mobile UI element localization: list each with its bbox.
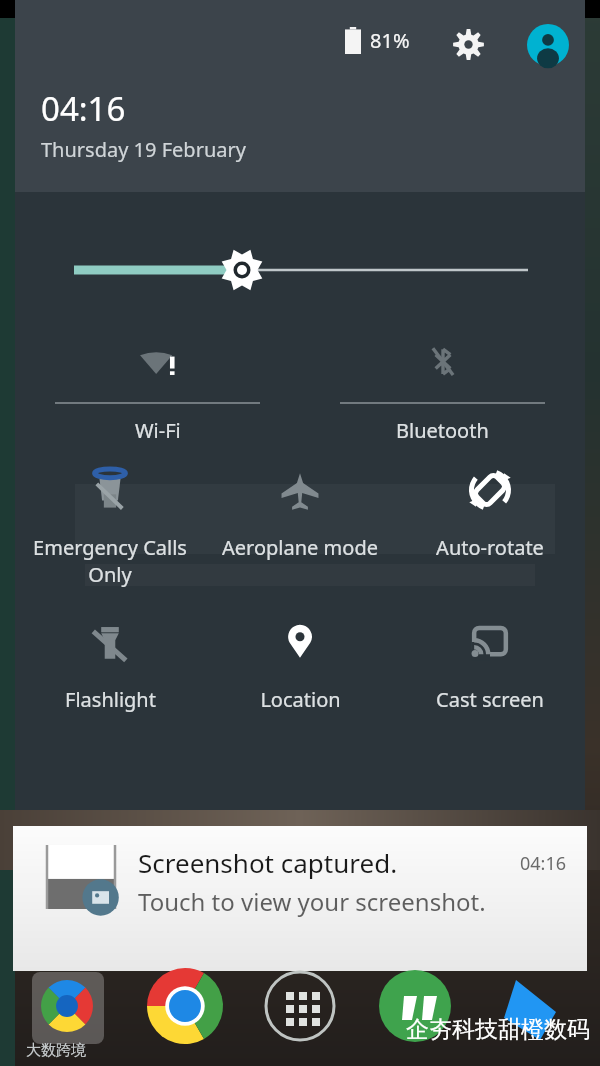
button[interactable]: Cast screen [395, 608, 585, 754]
staticText: 大数跨境 [26, 1041, 86, 1060]
button[interactable]: Bluetooth [300, 326, 585, 456]
staticText: Auto-rotate [436, 534, 544, 561]
button[interactable]: Screenshot captured. [13, 826, 587, 971]
staticText: 04:16 [41, 86, 126, 131]
button[interactable]: Settings [446, 22, 490, 66]
staticText: Cast screen [436, 686, 544, 713]
staticText: Emergency Calls Only [19, 534, 201, 588]
button[interactable]: Brightness [15, 240, 585, 300]
staticText: Thursday 19 February [41, 136, 246, 163]
staticText: Wi-Fi [135, 417, 181, 444]
button[interactable]: Wi-Fi [15, 326, 300, 456]
staticText: Touch to view your screenshot. [138, 885, 486, 918]
staticText: 企夯科技甜橙数码 [406, 1015, 590, 1044]
button[interactable]: Location [205, 608, 395, 754]
button[interactable]: Aeroplane mode [205, 456, 395, 608]
staticText: Flashlight [65, 686, 156, 713]
staticText: 81% [370, 27, 410, 54]
staticText: Screenshot captured. [138, 845, 398, 880]
button[interactable]: Flashlight [15, 608, 205, 754]
button[interactable]: Auto-rotate [395, 456, 585, 608]
staticText: 04:16 [520, 851, 567, 876]
staticText: Aeroplane mode [222, 534, 378, 561]
button[interactable]: Emergency Calls Only [15, 456, 205, 608]
staticText: Location [260, 686, 341, 713]
staticText: Bluetooth [396, 417, 489, 444]
button[interactable]: User profile [526, 23, 570, 67]
